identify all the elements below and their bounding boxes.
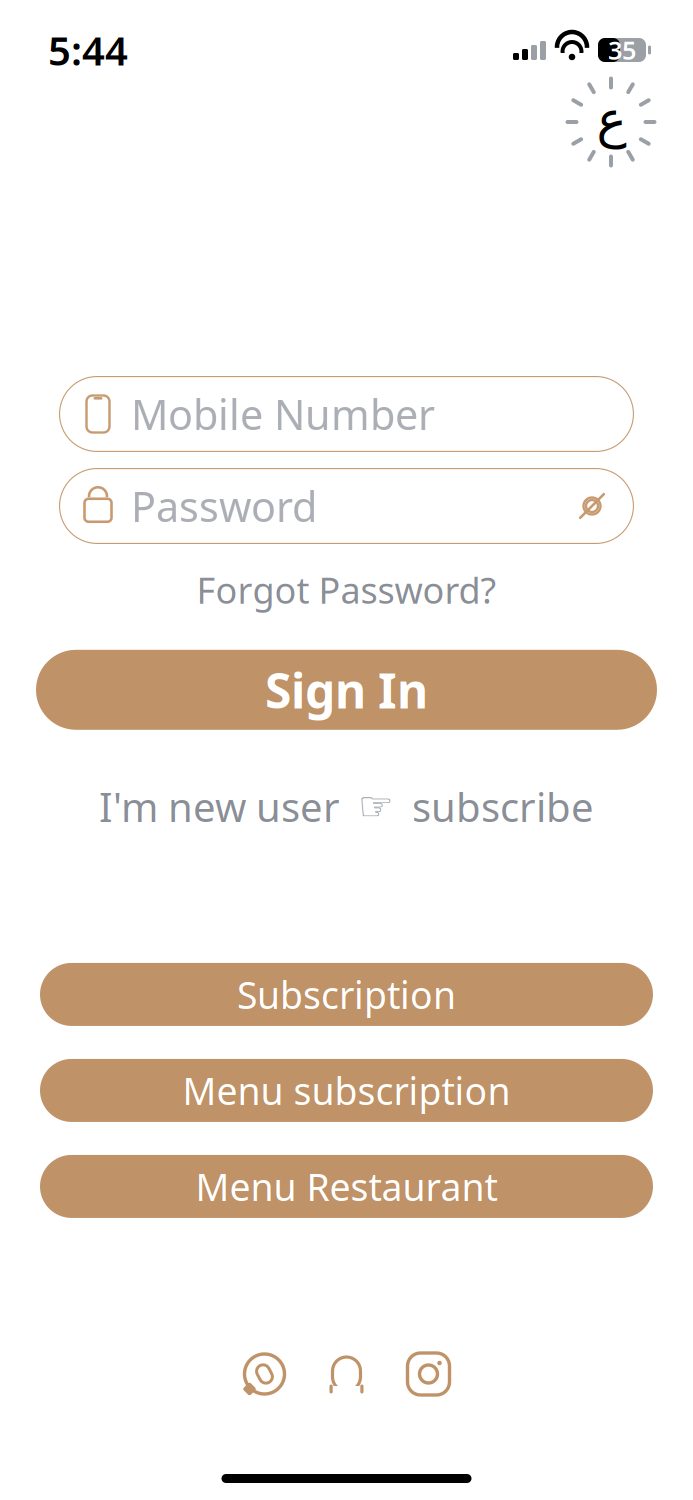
staticText: ع: [596, 91, 626, 149]
staticText: Mobile Number: [131, 387, 435, 441]
staticText: Password: [131, 479, 317, 533]
staticText: Menu subscription: [182, 1066, 510, 1115]
button[interactable]: Mobile Number: [59, 376, 634, 452]
staticText: 35: [608, 33, 636, 67]
staticText: Forgot Password?: [196, 566, 496, 614]
staticText: I'm new user: [99, 780, 340, 833]
button[interactable]: Sign In: [36, 650, 657, 730]
button[interactable]: Forgot Password?: [182, 558, 510, 622]
staticText: 5:44: [48, 23, 128, 76]
button[interactable]: Menu Restaurant: [40, 1155, 653, 1218]
button[interactable]: Instagram: [404, 1350, 452, 1398]
button[interactable]: Subscription: [40, 963, 653, 1026]
button[interactable]: Snapchat: [322, 1350, 370, 1398]
staticText: Menu Restaurant: [195, 1162, 497, 1211]
button[interactable]: WhatsApp: [240, 1350, 288, 1398]
staticText: Sign In: [265, 658, 428, 722]
button[interactable]: Password: [59, 468, 634, 544]
staticText: subscribe: [412, 780, 594, 833]
staticText: ☞: [358, 784, 394, 829]
button[interactable]: I'm new user: [99, 772, 594, 841]
staticText: Subscription: [237, 970, 456, 1019]
button[interactable]: Menu subscription: [40, 1059, 653, 1122]
